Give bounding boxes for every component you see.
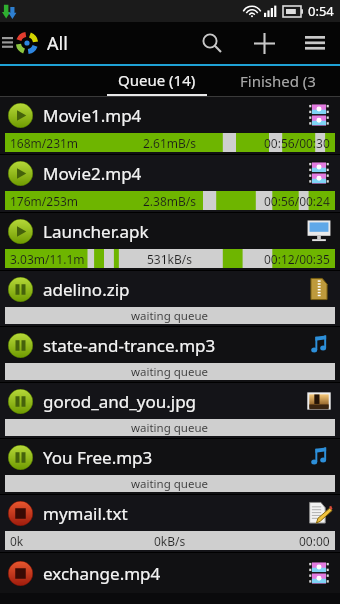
button[interactable]: Pause download bbox=[0, 155, 340, 213]
button[interactable]: Pause download bbox=[8, 161, 33, 186]
staticText: 531kB/s bbox=[147, 251, 193, 267]
button[interactable]: Resume download bbox=[8, 333, 33, 358]
button[interactable]: Resume download bbox=[0, 327, 340, 383]
staticText: exchange.mp4 bbox=[43, 562, 161, 585]
button[interactable]: Menu drawer bbox=[0, 22, 14, 64]
staticText: state-and-trance.mp3 bbox=[43, 334, 216, 357]
staticText: 00:00 bbox=[299, 533, 330, 549]
staticText: 2.38mB/s bbox=[143, 193, 197, 209]
staticText: All bbox=[47, 31, 68, 56]
staticText: mymail.txt bbox=[43, 502, 128, 525]
button[interactable]: Pause download bbox=[0, 213, 340, 271]
button[interactable]: More options bbox=[290, 22, 340, 64]
button[interactable]: Queue (14) bbox=[98, 66, 216, 96]
button[interactable]: Start download bbox=[0, 495, 340, 553]
staticText: waiting queue bbox=[131, 308, 209, 324]
button[interactable]: Start download bbox=[0, 553, 340, 593]
staticText: 00:56/00:24 bbox=[264, 193, 330, 209]
staticText: Movie2.mp4 bbox=[43, 162, 142, 185]
staticText: 168m/231m bbox=[10, 135, 79, 151]
staticText: Launcher.apk bbox=[43, 220, 149, 243]
staticText: Finished (3 bbox=[240, 71, 316, 91]
button[interactable]: All bbox=[14, 22, 68, 64]
staticText: Movie1.mp4 bbox=[43, 104, 142, 127]
button[interactable]: Resume download bbox=[8, 277, 33, 302]
staticText: waiting queue bbox=[131, 364, 209, 380]
staticText: 00:56/00:30 bbox=[264, 135, 330, 151]
staticText: 0:54 bbox=[308, 2, 334, 20]
staticText: adelino.zip bbox=[43, 278, 130, 301]
button[interactable]: Resume download bbox=[8, 445, 33, 470]
staticText: 00:12/00:35 bbox=[264, 251, 330, 267]
button[interactable]: Pause download bbox=[0, 97, 340, 155]
staticText: waiting queue bbox=[131, 476, 209, 492]
button[interactable]: Resume download bbox=[0, 383, 340, 439]
button[interactable]: Resume download bbox=[0, 439, 340, 495]
button[interactable]: Finished (3 bbox=[216, 66, 340, 96]
button[interactable]: Pause download bbox=[8, 219, 33, 244]
button[interactable]: Search bbox=[186, 22, 238, 64]
button[interactable]: Start download bbox=[8, 561, 33, 586]
staticText: gorod_and_you.jpg bbox=[43, 390, 197, 413]
button[interactable]: Add download bbox=[238, 22, 290, 64]
staticText: 2.61mB/s bbox=[143, 135, 197, 151]
staticText: 176m/253m bbox=[10, 193, 79, 209]
button[interactable]: Resume download bbox=[0, 271, 340, 327]
staticText: Queue (14) bbox=[118, 70, 196, 90]
staticText: 0kB/s bbox=[154, 533, 186, 549]
staticText: 3.03m/11.1m bbox=[10, 251, 85, 267]
button[interactable]: Resume download bbox=[8, 389, 33, 414]
staticText: You Free.mp3 bbox=[43, 446, 153, 469]
button[interactable]: Pause download bbox=[8, 103, 33, 128]
staticText: waiting queue bbox=[131, 420, 209, 436]
staticText: 0k bbox=[10, 533, 24, 549]
button[interactable]: Start download bbox=[8, 501, 33, 526]
